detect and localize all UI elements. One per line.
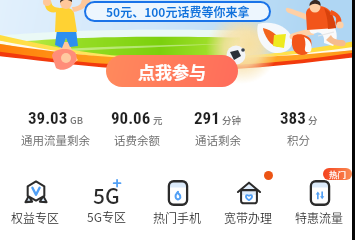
staticText: 50元、100元话费等你来拿 bbox=[106, 3, 250, 20]
staticText: 通话剩余 bbox=[195, 132, 241, 149]
button[interactable]: 90.06 bbox=[96, 95, 177, 150]
staticText: 热门 bbox=[329, 168, 347, 180]
button[interactable]: 宽带办理 bbox=[213, 177, 284, 240]
button[interactable]: 383 bbox=[258, 95, 339, 150]
staticText: 点我参与 bbox=[138, 59, 206, 84]
staticText: 宽带办理 bbox=[224, 209, 273, 226]
button[interactable]: 权益专区 bbox=[0, 177, 71, 240]
button[interactable]: 50元、100元话费等你来拿 bbox=[86, 3, 269, 20]
staticText: 话费余额 bbox=[114, 132, 160, 149]
staticText: 通用流量剩余 bbox=[21, 132, 90, 149]
button[interactable]: 291 bbox=[177, 95, 258, 150]
staticText: 383 bbox=[280, 108, 306, 128]
staticText: 5G专区 bbox=[87, 208, 126, 225]
staticText: 热门手机 bbox=[153, 209, 202, 226]
staticText: 分钟 bbox=[222, 113, 242, 127]
staticText: 元 bbox=[153, 113, 163, 127]
button[interactable]: 点我参与 bbox=[106, 55, 238, 87]
staticText: 39.03 bbox=[28, 108, 68, 128]
staticText: GB bbox=[70, 113, 83, 127]
staticText: 5G bbox=[93, 180, 120, 204]
staticText: 特惠流量 bbox=[295, 209, 344, 226]
staticText: 291 bbox=[194, 108, 220, 128]
button[interactable]: 热门手机 bbox=[142, 177, 213, 240]
button[interactable]: 5G bbox=[71, 177, 142, 240]
staticText: 90.06 bbox=[111, 108, 151, 128]
button[interactable]: 特惠流量 bbox=[284, 177, 355, 240]
staticText: 积分 bbox=[287, 132, 310, 149]
button[interactable]: 39.03 bbox=[14, 95, 96, 150]
staticText: 分 bbox=[308, 113, 318, 127]
staticText: 权益专区 bbox=[11, 209, 60, 226]
